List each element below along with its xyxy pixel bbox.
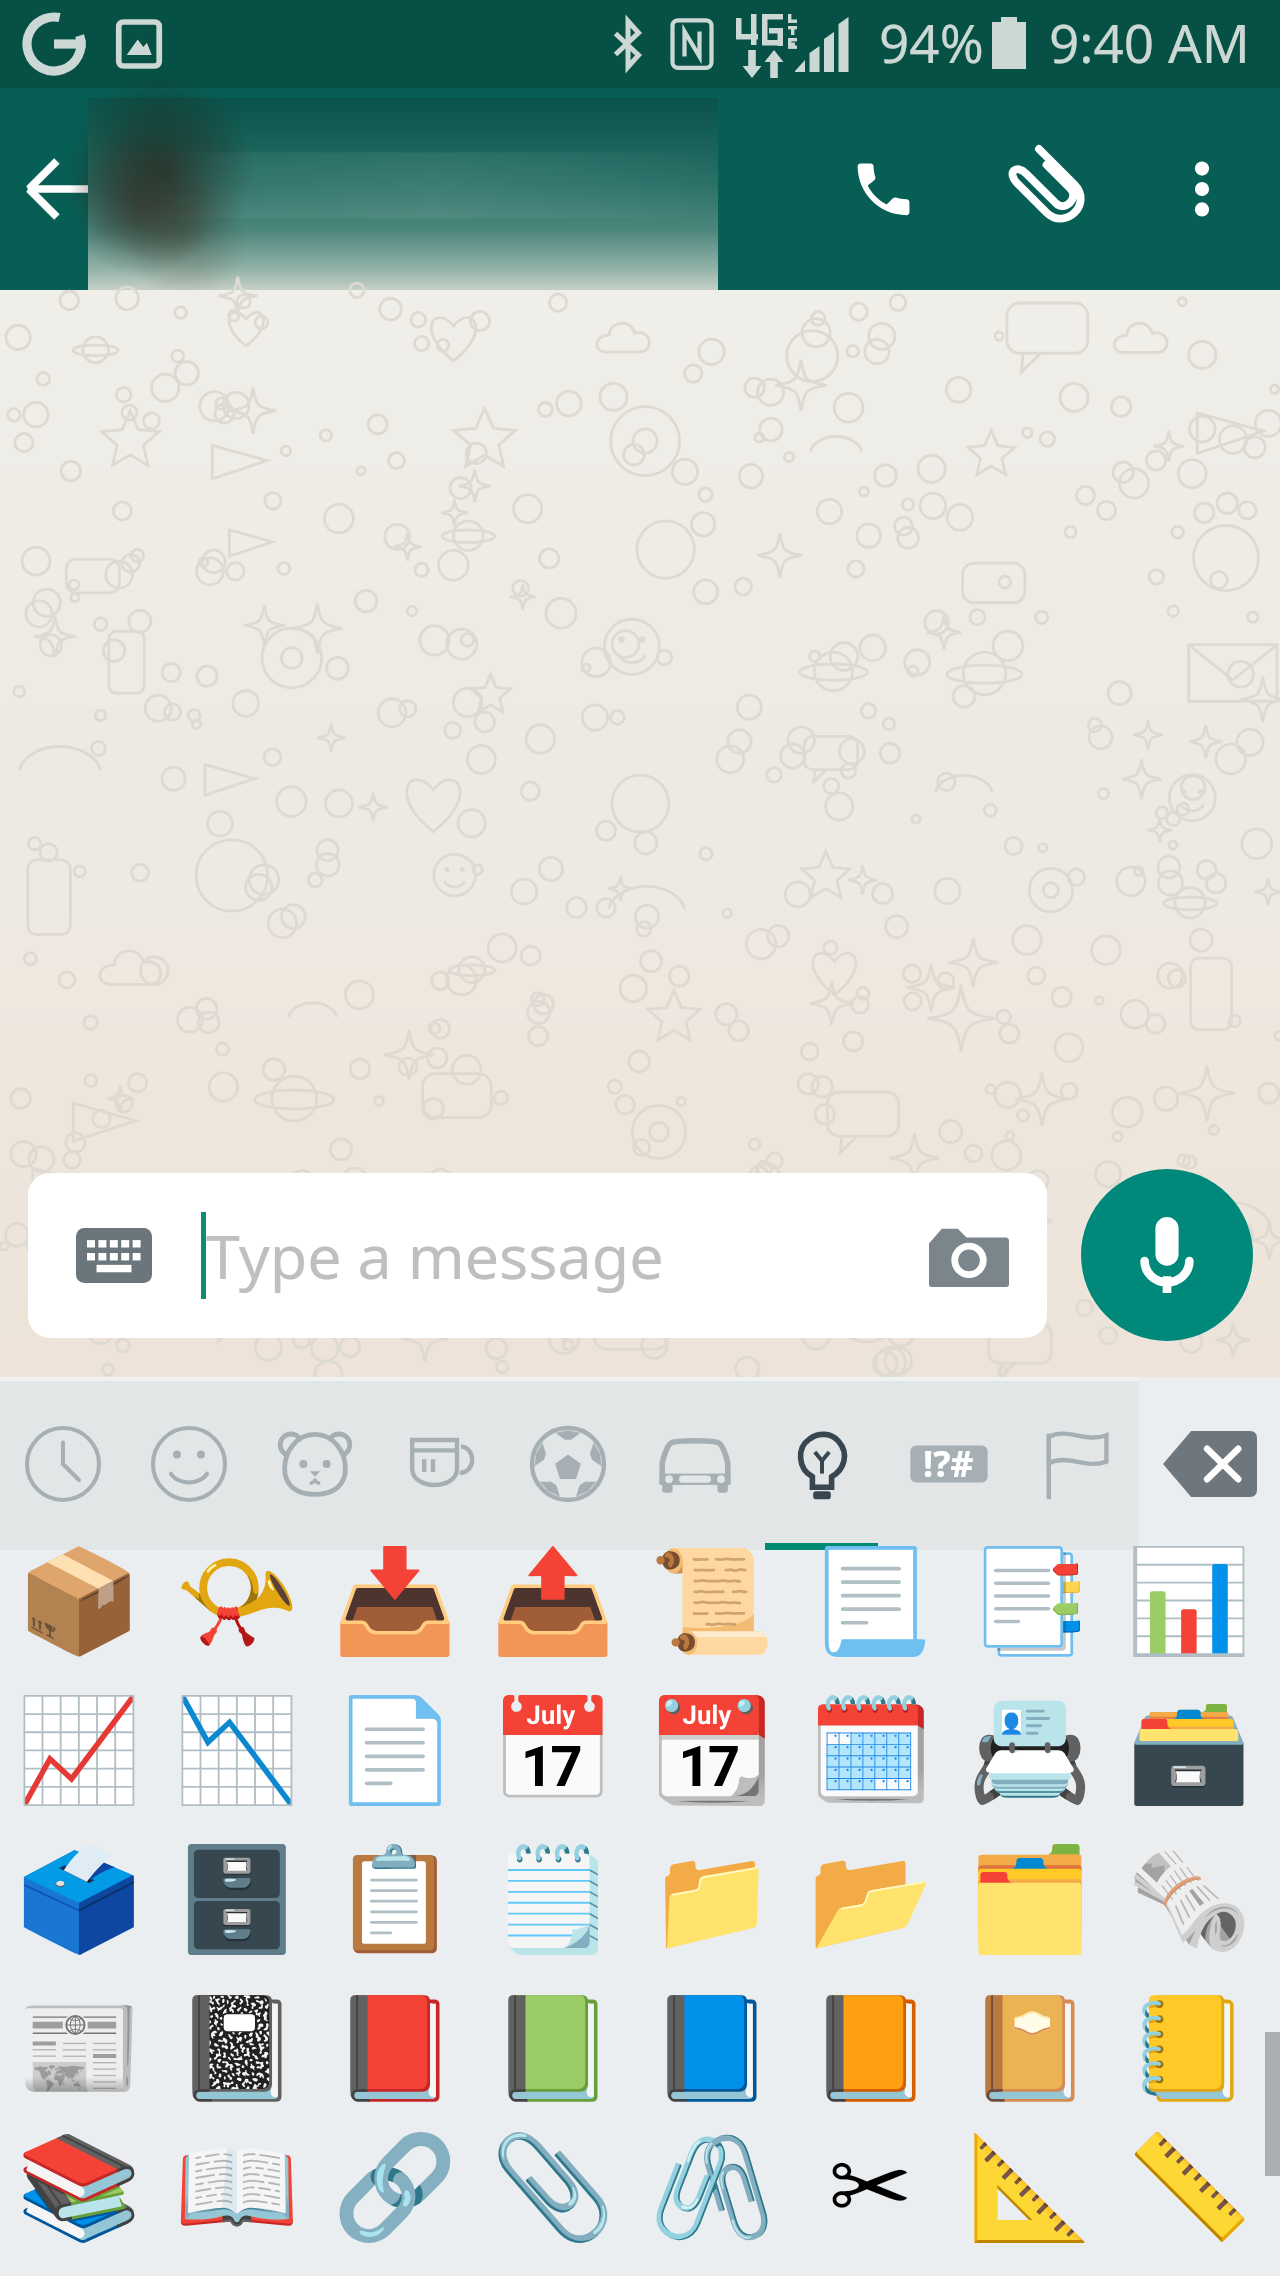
button[interactable]: 📃 (791, 1526, 950, 1675)
staticText: 📦 (16, 1542, 142, 1660)
button[interactable]: 📋 (316, 1824, 474, 1973)
button[interactable]: 📒 (1109, 1973, 1268, 2122)
staticText: 📔 (967, 1989, 1093, 2107)
button[interactable]: 📯 (158, 1526, 316, 1675)
button[interactable]: 📕 (316, 1973, 474, 2122)
button[interactable]: 📐 (950, 2122, 1109, 2252)
button[interactable]: 🗄 (158, 1824, 316, 1973)
staticText: Type a message (206, 1214, 664, 1297)
button[interactable]: Keyboard (38, 1173, 190, 1338)
staticText: 📄 (332, 1691, 458, 1809)
button[interactable]: Smileys (126, 1377, 252, 1550)
staticText: 📇 (967, 1691, 1093, 1809)
staticText: 📑 (967, 1542, 1093, 1660)
button[interactable]: 📔 (950, 1973, 1109, 2122)
staticText: 📗 (490, 1989, 616, 2107)
button[interactable]: Keyboard (28, 1173, 1047, 1338)
staticText: 🗃 (1126, 1691, 1252, 1809)
staticText: 📥 (332, 1542, 458, 1660)
button[interactable]: More options (1142, 129, 1262, 249)
staticText: 📘 (649, 1989, 775, 2107)
button[interactable]: 🗒 (474, 1824, 632, 1973)
button[interactable]: 📇 (950, 1675, 1109, 1824)
staticText: 📚 (16, 2128, 142, 2246)
staticText: 📎 (490, 2128, 616, 2246)
button[interactable]: 📥 (316, 1526, 474, 1675)
button[interactable]: 🗞 (1109, 1824, 1268, 1973)
button[interactable]: 📁 (632, 1824, 791, 1973)
button[interactable]: 📎 (474, 2122, 632, 2252)
button[interactable]: 🗓 (791, 1675, 950, 1824)
staticText: 📏 (1126, 2128, 1252, 2246)
button[interactable]: 📆 (632, 1675, 791, 1824)
button[interactable]: 📦 (0, 1526, 158, 1675)
button[interactable]: 📓 (158, 1973, 316, 2122)
staticText: 📐 (967, 2128, 1093, 2246)
button[interactable]: 📰 (0, 1973, 158, 2122)
button[interactable]: Attach (991, 129, 1111, 249)
button[interactable]: Objects (758, 1377, 885, 1550)
staticText: 📂 (808, 1840, 934, 1958)
button[interactable]: 📊 (1109, 1526, 1268, 1675)
button[interactable]: Back (0, 130, 118, 248)
staticText: 📙 (808, 1989, 934, 2107)
staticText: 📕 (332, 1989, 458, 2107)
staticText: 🗄 (174, 1840, 300, 1958)
button[interactable]: Recent (0, 1377, 126, 1550)
button[interactable]: 🗂 (950, 1824, 1109, 1973)
staticText: 📰 (16, 1989, 142, 2107)
staticText: 📊 (1126, 1542, 1252, 1660)
button[interactable]: 📘 (632, 1973, 791, 2122)
button[interactable]: 📄 (316, 1675, 474, 1824)
staticText: 📖 (174, 2128, 300, 2246)
button[interactable]: 📤 (474, 1526, 632, 1675)
button[interactable]: ✂ (791, 2122, 950, 2252)
staticText: 🗓 (808, 1691, 934, 1809)
button[interactable]: Sports (504, 1377, 631, 1550)
button[interactable]: 📚 (0, 2122, 158, 2252)
button[interactable]: 📗 (474, 1973, 632, 2122)
staticText: 📤 (490, 1542, 616, 1660)
button[interactable]: Symbols (885, 1377, 1012, 1550)
button[interactable]: 📅 (474, 1675, 632, 1824)
staticText: 📯 (174, 1542, 300, 1660)
button[interactable]: 🖇 (632, 2122, 791, 2252)
button[interactable]: Backspace (1139, 1377, 1280, 1550)
staticText: 94% (879, 6, 984, 78)
staticText: 📁 (649, 1840, 775, 1958)
button[interactable]: Voice message (1081, 1169, 1253, 1341)
staticText: 📉 (174, 1691, 300, 1809)
button[interactable]: Flags (1012, 1377, 1139, 1550)
staticText: 📈 (16, 1691, 142, 1809)
staticText: 🖇 (649, 2128, 775, 2246)
staticText: 🗂 (967, 1840, 1093, 1958)
staticText: 🗳 (16, 1840, 142, 1958)
button[interactable]: 📈 (0, 1675, 158, 1824)
staticText: 📋 (332, 1840, 458, 1958)
button[interactable]: Travel (631, 1377, 758, 1550)
staticText: 📒 (1126, 1989, 1252, 2107)
button[interactable]: 📖 (158, 2122, 316, 2252)
button[interactable]: 🔗 (316, 2122, 474, 2252)
button[interactable]: 📙 (791, 1973, 950, 2122)
button[interactable]: 📜 (632, 1526, 791, 1675)
staticText: 📃 (808, 1542, 934, 1660)
staticText: ✂ (828, 2128, 913, 2246)
staticText: 📅 (490, 1691, 616, 1809)
staticText: 🗒 (490, 1840, 616, 1958)
button[interactable]: 🗃 (1109, 1675, 1268, 1824)
button[interactable]: Animals (252, 1377, 378, 1550)
button[interactable]: Call (823, 129, 943, 249)
staticText: !?# (923, 1439, 974, 1488)
button[interactable]: 🗳 (0, 1824, 158, 1973)
button[interactable]: 📉 (158, 1675, 316, 1824)
staticText: 🔗 (332, 2128, 458, 2246)
button[interactable]: 📂 (791, 1824, 950, 1973)
button[interactable]: Food (378, 1377, 504, 1550)
button[interactable]: 📑 (950, 1526, 1109, 1675)
button[interactable]: Camera (895, 1173, 1043, 1338)
staticText: 📜 (649, 1542, 775, 1660)
staticText: 📓 (174, 1989, 300, 2107)
staticText: 📆 (649, 1691, 775, 1809)
button[interactable]: 📏 (1109, 2122, 1268, 2252)
